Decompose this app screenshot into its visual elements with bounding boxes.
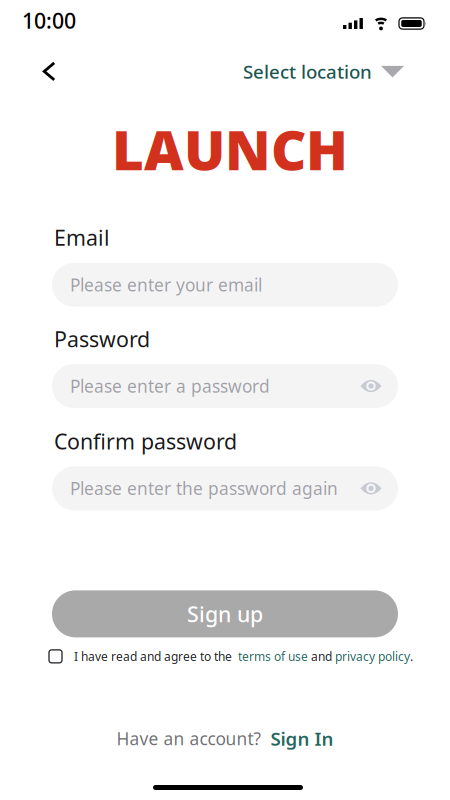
staticText: Please enter a password xyxy=(70,374,270,397)
staticText: I have read and agree to the xyxy=(74,648,238,664)
staticText: Please enter the password again xyxy=(70,477,338,500)
staticText: Have an account? xyxy=(116,727,261,750)
button[interactable]: Show password xyxy=(360,379,382,393)
staticText: and xyxy=(308,648,335,664)
staticText: Sign In xyxy=(270,726,333,751)
staticText: Sign up xyxy=(187,600,263,628)
staticText: Select location xyxy=(243,59,372,84)
staticText: Please enter your email xyxy=(70,273,262,296)
staticText: Email xyxy=(54,223,110,252)
staticText: LAUNCH xyxy=(112,113,348,185)
staticText: 10:00 xyxy=(22,6,76,35)
staticText: . xyxy=(410,648,413,664)
button[interactable]: Sign In xyxy=(270,726,333,751)
staticText: Password xyxy=(54,325,150,353)
staticText: Confirm password xyxy=(54,427,237,455)
button[interactable]: Select location xyxy=(243,59,404,84)
button[interactable]: privacy policy xyxy=(335,648,410,664)
button[interactable]: Agree to terms xyxy=(49,650,62,663)
button[interactable]: Back xyxy=(42,61,57,81)
staticText: privacy policy xyxy=(335,648,410,664)
button[interactable]: Sign up xyxy=(52,590,398,637)
button[interactable]: terms of use xyxy=(238,648,308,664)
staticText: terms of use xyxy=(238,648,308,664)
button[interactable]: Show password xyxy=(360,482,382,495)
